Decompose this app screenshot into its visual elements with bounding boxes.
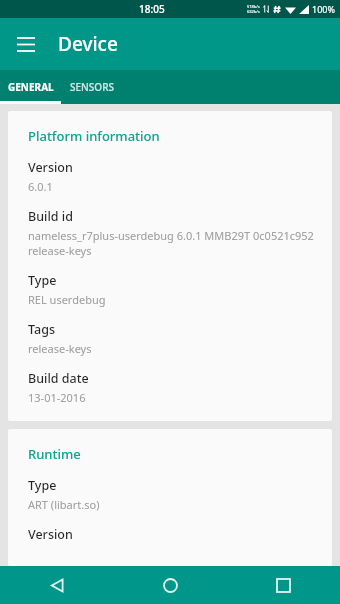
staticText: 632b/s [247, 9, 260, 14]
staticText: REL userdebug [28, 292, 106, 307]
button[interactable]: GENERAL [0, 70, 61, 104]
staticText: nameless_r7plus-userdebug 6.0.1 MMB29T 0… [28, 228, 318, 258]
staticText: Build id [28, 208, 73, 225]
staticText: Type [28, 272, 57, 289]
button[interactable]: Back [0, 566, 114, 604]
staticText: GENERAL [8, 80, 54, 94]
staticText: Runtime [28, 445, 81, 463]
staticText: Platform information [28, 127, 160, 145]
staticText: Tags [28, 321, 56, 338]
staticText: 13-01-2016 [28, 390, 86, 405]
button[interactable]: Home [114, 566, 227, 604]
staticText: Version [28, 159, 73, 176]
button[interactable]: SENSORS [61, 70, 122, 104]
staticText: 100% [312, 3, 335, 15]
staticText: release-keys [28, 341, 92, 356]
staticText: Device [58, 31, 118, 57]
staticText: Build date [28, 370, 89, 387]
button[interactable]: Open navigation menu [8, 26, 44, 62]
staticText: Type [28, 477, 57, 494]
button[interactable]: Recent apps [227, 566, 340, 604]
staticText: ART (libart.so) [28, 497, 100, 512]
staticText: Version [28, 526, 73, 543]
staticText: 6.0.1 [28, 179, 53, 194]
staticText: 18:05 [139, 2, 165, 16]
staticText: 518b/s [247, 4, 260, 9]
staticText: SENSORS [70, 80, 114, 94]
